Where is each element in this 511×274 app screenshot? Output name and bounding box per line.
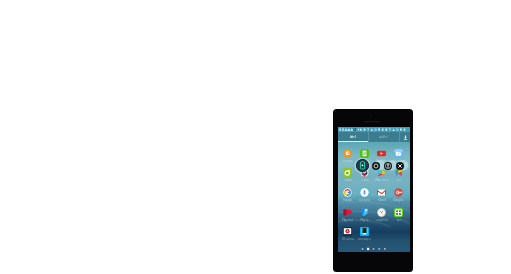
button[interactable]: Gmail bbox=[373, 188, 390, 202]
staticText: 모바일팩스 bbox=[358, 237, 371, 240]
button[interactable]: 네이버 bbox=[356, 149, 373, 162]
staticText: Google bbox=[343, 198, 352, 202]
button[interactable]: Assistive menu bbox=[356, 159, 369, 172]
button[interactable]: Google+ bbox=[390, 188, 407, 202]
button[interactable]: Play 스토어 bbox=[373, 168, 390, 182]
button[interactable]: Close bbox=[396, 162, 404, 170]
staticText: 알람/시계 bbox=[376, 218, 388, 222]
staticText: Google+ bbox=[393, 198, 404, 202]
button[interactable]: 클라우드 bbox=[390, 149, 407, 162]
staticText: 음성검색 bbox=[359, 198, 370, 201]
staticText: 클라우드 bbox=[393, 159, 404, 162]
button[interactable]: 받기 bbox=[338, 132, 368, 142]
button[interactable]: Settings bbox=[372, 162, 380, 170]
button[interactable]: 카카오톡 bbox=[339, 149, 356, 162]
staticText: 지도 bbox=[396, 178, 402, 181]
staticText: V3 모바일 bbox=[342, 237, 354, 241]
button[interactable]: YouTube bbox=[373, 149, 390, 163]
staticText: Play 스토어 bbox=[375, 178, 389, 182]
button[interactable]: Download bbox=[400, 132, 410, 142]
staticText: 카메라 bbox=[344, 178, 352, 181]
staticText: 앱스 bbox=[396, 218, 402, 221]
staticText: YouTube bbox=[376, 159, 387, 163]
button[interactable]: 보내기 bbox=[369, 132, 399, 142]
button[interactable]: 구글폰 bbox=[356, 168, 373, 181]
button[interactable]: Play 북 bbox=[356, 208, 373, 222]
button[interactable]: Lock bbox=[384, 162, 392, 170]
button[interactable]: 앱스 bbox=[390, 208, 407, 221]
button[interactable]: 음성검색 bbox=[356, 188, 373, 201]
button[interactable]: V3 모바일 bbox=[339, 227, 356, 241]
button[interactable]: 알람/시계 bbox=[373, 208, 390, 222]
staticText: 보내기 bbox=[379, 135, 389, 139]
staticText: Play 북 bbox=[360, 218, 369, 222]
staticText: 네이버 bbox=[361, 159, 369, 162]
staticText: 카카오톡 bbox=[342, 159, 353, 162]
button[interactable]: Play 무비 bbox=[339, 208, 356, 222]
staticText: Gmail bbox=[378, 198, 386, 202]
button[interactable]: 지도 bbox=[390, 168, 407, 181]
staticText: 구글폰 bbox=[361, 178, 369, 181]
button[interactable]: Google bbox=[339, 188, 356, 202]
staticText: 받기 bbox=[350, 135, 357, 139]
staticText: Play 무비 bbox=[342, 218, 353, 222]
button[interactable]: 카메라 bbox=[339, 168, 356, 181]
button[interactable]: 모바일팩스 bbox=[356, 227, 373, 240]
